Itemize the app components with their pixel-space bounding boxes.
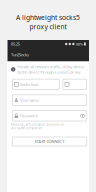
staticText: 48% xyxy=(76,41,83,47)
staticText: 05:25 xyxy=(11,41,20,47)
staticText: A lightweight socks5 xyxy=(16,13,80,22)
staticText: Tun2Socks xyxy=(11,52,29,57)
staticText: START CONNECT xyxy=(34,139,64,144)
button[interactable]: START CONNECT xyxy=(12,137,87,146)
staticText: Handle all network traffic of any device xyxy=(17,64,84,69)
staticText: Socks host xyxy=(20,82,38,87)
staticText: i xyxy=(13,67,14,72)
staticText: by the device through a socks5 proxy. xyxy=(17,69,81,75)
staticText: Username xyxy=(20,97,39,103)
staticText: *Optional, authentication depends on xyxy=(10,123,64,126)
staticText: your socks5 proxy server. xyxy=(10,126,43,130)
staticText: proxy client xyxy=(29,22,66,31)
staticText: Password xyxy=(20,113,37,118)
